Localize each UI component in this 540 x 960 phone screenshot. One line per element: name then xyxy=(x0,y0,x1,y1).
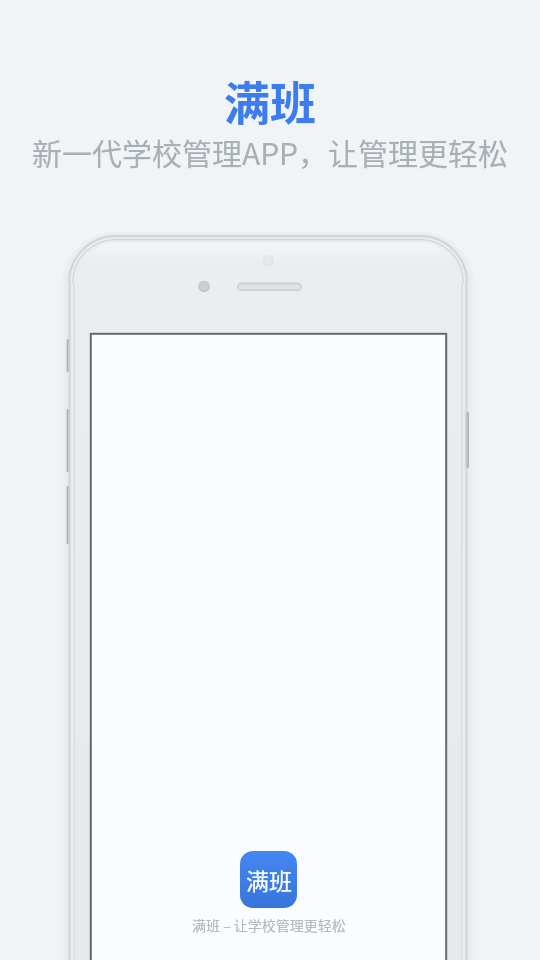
staticText: 满班 xyxy=(0,67,540,134)
staticText: 新一代学校管理APP，让管理更轻松 xyxy=(0,130,540,173)
staticText: 满班 – 让学校管理更轻松 xyxy=(192,915,346,935)
staticText: 满班 xyxy=(246,863,292,896)
button[interactable]: 满班 app icon xyxy=(240,851,297,908)
